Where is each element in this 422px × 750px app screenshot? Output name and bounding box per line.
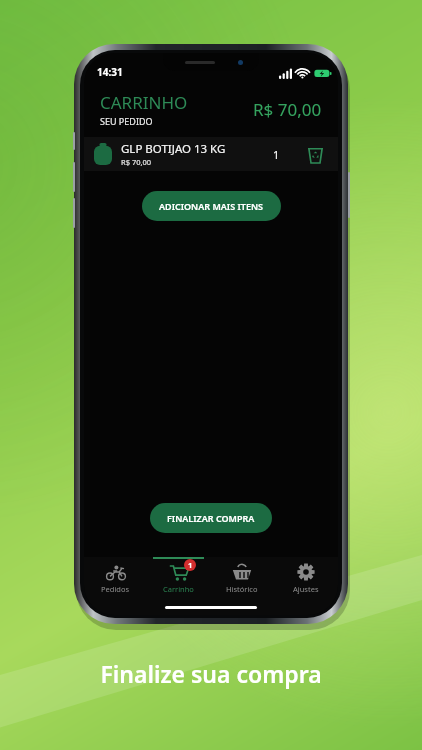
staticText: CARRINHO <box>100 91 188 114</box>
staticText: Ajustes <box>293 584 319 594</box>
staticText: R$ 70,00 <box>121 157 152 167</box>
button[interactable]: Pedidos <box>84 557 147 599</box>
button[interactable]: 1 <box>147 557 210 599</box>
staticText: SEU PEDIDO <box>100 115 153 127</box>
staticText: 1 <box>188 560 193 570</box>
button[interactable]: FINALIZAR COMPRA <box>150 503 272 533</box>
staticText: 1 <box>273 147 280 162</box>
staticText: FINALIZAR COMPRA <box>167 512 255 524</box>
staticText: Finalize sua compra <box>0 658 422 689</box>
button[interactable]: GLP BOTIJAO 13 KG <box>84 137 338 171</box>
staticText: Histórico <box>226 584 258 594</box>
button[interactable]: Remover item <box>302 141 328 167</box>
staticText: 14:31 <box>97 65 123 79</box>
staticText: ADICIONAR MAIS ITENS <box>159 200 264 212</box>
button[interactable]: Histórico <box>210 557 274 599</box>
staticText: Pedidos <box>101 584 130 594</box>
button[interactable]: ADICIONAR MAIS ITENS <box>142 191 281 221</box>
staticText: GLP BOTIJAO 13 KG <box>121 141 226 157</box>
button[interactable]: Ajustes <box>274 557 338 599</box>
staticText: Carrinho <box>163 584 194 594</box>
staticText: R$ 70,00 <box>253 98 322 121</box>
